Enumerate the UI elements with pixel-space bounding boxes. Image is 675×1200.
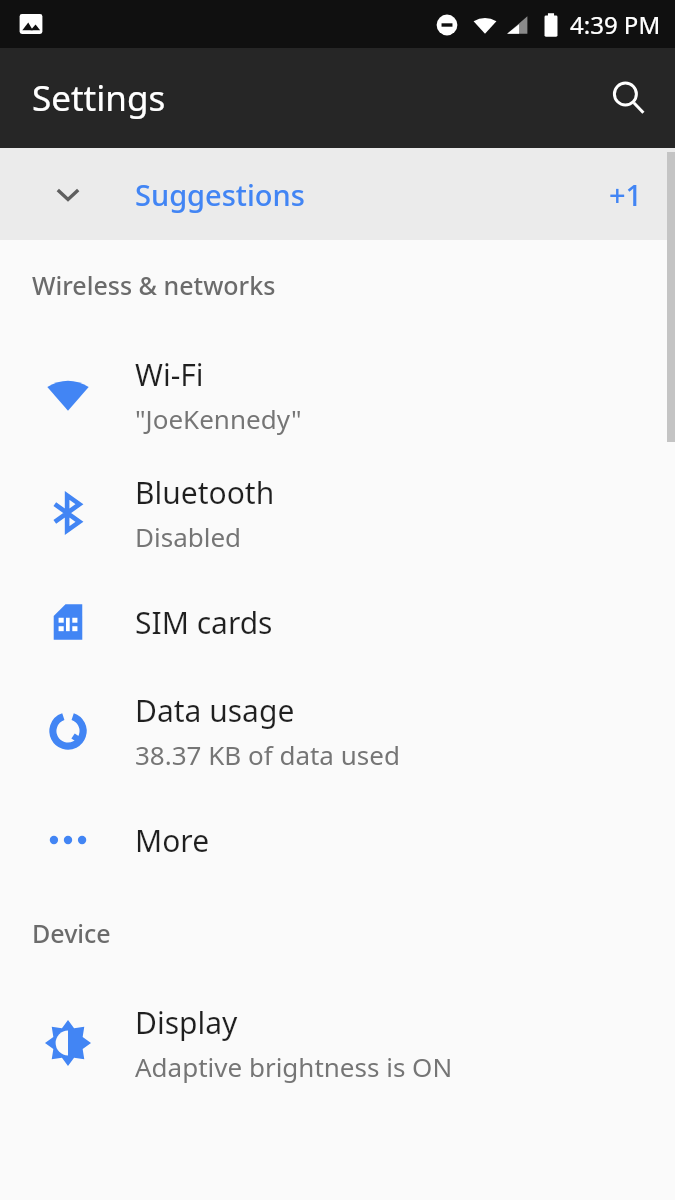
button[interactable]: Wi-Fi (0, 336, 675, 454)
button[interactable]: Display (0, 984, 675, 1102)
staticText: Disabled (135, 519, 242, 554)
button[interactable]: Suggestions (0, 148, 675, 240)
button[interactable]: More (0, 790, 675, 890)
button[interactable]: Data usage (0, 672, 675, 790)
staticText: More (135, 820, 210, 861)
staticText: Wi-Fi (135, 354, 204, 395)
staticText: Bluetooth (135, 472, 275, 513)
staticText: SIM cards (135, 602, 273, 643)
staticText: Adaptive brightness is ON (135, 1049, 453, 1084)
button[interactable]: SIM cards (0, 572, 675, 672)
staticText: 4:39 PM (570, 8, 661, 41)
button[interactable]: Search (601, 70, 657, 126)
staticText: Display (135, 1002, 238, 1043)
staticText: "JoeKennedy" (135, 401, 302, 436)
staticText: Wireless & networks (32, 268, 276, 302)
staticText: +1 (609, 175, 643, 214)
staticText: Settings (32, 74, 166, 122)
staticText: Data usage (135, 690, 295, 731)
staticText: Suggestions (135, 175, 305, 214)
staticText: 38.37 KB of data used (135, 737, 400, 772)
button[interactable]: Bluetooth (0, 454, 675, 572)
staticText: Device (32, 916, 111, 950)
